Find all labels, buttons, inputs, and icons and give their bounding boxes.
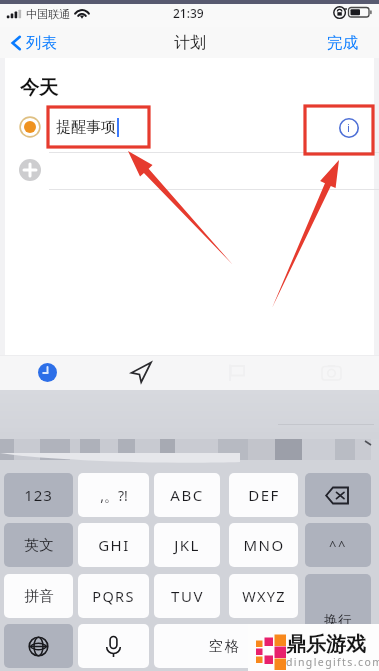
- button[interactable]: 完成: [313, 27, 371, 58]
- staticText: 鼎乐游戏: [286, 632, 366, 657]
- staticText: GHI: [98, 535, 130, 555]
- button[interactable]: Switch keyboard: [4, 624, 73, 668]
- staticText: 提醒事项: [56, 118, 116, 137]
- button[interactable]: 123: [4, 473, 73, 517]
- other: Add reminder: [19, 159, 41, 181]
- staticText: 拼音: [24, 587, 54, 605]
- staticText: 计划: [174, 33, 206, 53]
- staticText: i: [347, 120, 350, 136]
- staticText: 换行: [324, 612, 352, 629]
- button[interactable]: DEF: [229, 473, 298, 517]
- button[interactable]: GHI: [78, 523, 149, 567]
- button[interactable]: 空格: [154, 624, 294, 668]
- button[interactable]: MNO: [229, 523, 298, 567]
- button[interactable]: Location: [94, 355, 189, 390]
- button[interactable]: Backspace: [305, 473, 371, 517]
- staticText: 空格: [208, 637, 240, 655]
- staticText: 21:39: [173, 5, 204, 21]
- staticText: ,。?!: [100, 486, 128, 505]
- staticText: 列表: [26, 33, 57, 53]
- staticText: TUV: [171, 586, 204, 606]
- staticText: ^^: [329, 536, 347, 554]
- button[interactable]: Add reminder: [5, 153, 374, 186]
- button[interactable]: PQRS: [78, 574, 149, 618]
- button[interactable]: 列表: [10, 27, 82, 58]
- button[interactable]: 英文: [4, 523, 73, 567]
- staticText: 完成: [327, 33, 358, 53]
- staticText: JKL: [174, 535, 200, 555]
- staticText: PQRS: [92, 586, 135, 606]
- button[interactable]: Voice input: [78, 624, 149, 668]
- button[interactable]: ^^: [305, 523, 371, 567]
- button[interactable]: JKL: [154, 523, 220, 567]
- staticText: WXYZ: [242, 586, 286, 606]
- staticText: ABC: [170, 485, 204, 505]
- button[interactable]: Details: [334, 113, 363, 142]
- staticText: MNO: [243, 535, 285, 555]
- staticText: 123: [24, 485, 53, 505]
- button[interactable]: WXYZ: [229, 574, 298, 618]
- staticText: dinglegifts.com: [286, 655, 379, 669]
- staticText: DEF: [248, 485, 280, 505]
- button[interactable]: Schedule: [0, 355, 94, 390]
- button[interactable]: ,。?!: [78, 473, 149, 517]
- staticText: 英文: [24, 536, 54, 554]
- button[interactable]: ABC: [154, 473, 220, 517]
- button[interactable]: 提醒事项: [5, 104, 374, 150]
- button[interactable]: 换行: [305, 574, 371, 666]
- staticText: 中国联通: [26, 7, 70, 21]
- staticText: 今天: [20, 76, 58, 100]
- button[interactable]: 拼音: [4, 574, 73, 618]
- button[interactable]: TUV: [154, 574, 220, 618]
